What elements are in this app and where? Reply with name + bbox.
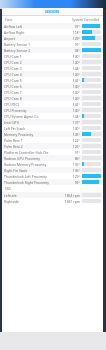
button[interactable]: CPU Core 5 xyxy=(2,77,103,83)
staticText: SENSORS xyxy=(45,10,60,14)
staticText: Fans xyxy=(5,18,12,22)
button[interactable]: Platform Controller Hub Die xyxy=(2,149,103,155)
staticText: 140° xyxy=(72,96,80,101)
button[interactable]: Thunderbolt Right Proximity xyxy=(2,179,103,185)
staticText: Airport xyxy=(4,36,72,41)
staticText: CPU Core 8 xyxy=(4,96,72,101)
staticText: 142° xyxy=(72,78,80,83)
staticText: CPU Core 7 xyxy=(4,90,72,95)
staticText: Intel GPU xyxy=(4,120,72,125)
button[interactable]: Right Fin Stack xyxy=(2,167,103,173)
button[interactable]: CPU System Agent Co xyxy=(2,113,103,119)
staticText: Airflow Left xyxy=(4,24,74,29)
staticText: 129° xyxy=(72,36,80,41)
staticText: Airflow Right xyxy=(4,30,72,35)
staticText: 145° xyxy=(72,132,80,137)
button[interactable]: CPU Core 2 xyxy=(2,59,103,65)
button[interactable]: Palm Rest 2 xyxy=(2,143,103,149)
button[interactable]: Battery Sensor 1 xyxy=(2,41,103,47)
button[interactable]: Memory Proximity xyxy=(2,131,103,137)
button[interactable]: CPU Proximity xyxy=(2,107,103,113)
button[interactable]: Radeon Memory Proximity xyxy=(2,161,103,167)
staticText: Platform Controller Hub Die xyxy=(4,150,74,155)
button[interactable]: Battery Sensor 2 xyxy=(2,47,103,53)
staticText: Radeon GPU Proximity xyxy=(4,156,74,161)
staticText: CPU Core 1 xyxy=(4,54,72,59)
staticText: 136° xyxy=(72,168,80,173)
staticText: 140° xyxy=(72,60,80,65)
button[interactable]: CPU Core 1 xyxy=(2,53,103,59)
staticText: 129° xyxy=(72,174,80,179)
button[interactable]: Intel GPU xyxy=(2,119,103,125)
staticText: CPU Core 3 xyxy=(4,66,72,71)
staticText: 94° xyxy=(74,48,80,53)
staticText: Palm Rest 2 xyxy=(4,144,72,149)
staticText: Radeon Memory Proximity xyxy=(4,162,72,167)
staticText: 118° xyxy=(72,30,80,35)
staticText: CPU Core 2 xyxy=(4,60,72,65)
staticText: CPU PECI xyxy=(4,102,72,107)
button[interactable]: Airport xyxy=(2,35,103,41)
staticText: Battery Sensor 2 xyxy=(4,48,74,53)
staticText: Memory Proximity xyxy=(4,132,72,137)
staticText: 1681 rpm xyxy=(64,199,80,204)
staticText: 140° xyxy=(72,54,80,59)
staticText: CPU Core 4 xyxy=(4,72,72,77)
staticText: SSD xyxy=(5,187,11,191)
button[interactable]: CPU Core 4 xyxy=(2,71,103,77)
button[interactable]: Thunderbolt Left Proximity xyxy=(2,173,103,179)
staticText: 122° xyxy=(72,138,80,143)
staticText: Palm Rest 1 xyxy=(4,138,72,143)
button[interactable]: Airflow Right xyxy=(2,29,103,35)
staticText: Thunderbolt Left Proximity xyxy=(4,174,72,179)
staticText: 140° xyxy=(72,108,80,113)
staticText: 135° xyxy=(72,162,80,167)
staticText: 140° xyxy=(72,126,80,131)
staticText: 140° xyxy=(72,72,80,77)
button[interactable]: Leftside xyxy=(2,192,103,198)
staticText: 86° xyxy=(74,156,80,161)
staticText: Right Fin Stack xyxy=(4,168,72,173)
staticText: Rightside xyxy=(4,199,64,204)
button[interactable]: CPU Core 7 xyxy=(2,89,103,95)
staticText: Thunderbolt Right Proximity xyxy=(4,180,74,185)
staticText: CPU Core 6 xyxy=(4,84,72,89)
staticText: 91° xyxy=(74,42,80,47)
staticText: 97° xyxy=(74,24,80,29)
button[interactable]: CPU Core 6 xyxy=(2,83,103,89)
button[interactable]: Palm Rest 1 xyxy=(2,137,103,143)
staticText: 144° xyxy=(72,114,80,119)
staticText: Left Fin Stack xyxy=(4,126,72,131)
button[interactable]: CPU Core 8 xyxy=(2,95,103,101)
staticText: 140° xyxy=(72,84,80,89)
button[interactable]: CPU PECI xyxy=(2,101,103,107)
staticText: 93° xyxy=(74,180,80,185)
staticText: CPU Proximity xyxy=(4,108,72,113)
staticText: 137° xyxy=(72,120,80,125)
staticText: CPU System Agent Co xyxy=(4,114,72,119)
staticText: CPU Core 5 xyxy=(4,78,72,83)
staticText: 140° xyxy=(72,90,80,95)
staticText: 144° xyxy=(72,66,80,71)
staticText: 1864 rpm xyxy=(64,193,80,198)
staticText: Leftside xyxy=(4,193,64,198)
button[interactable]: Left Fin Stack xyxy=(2,125,103,131)
staticText: 126° xyxy=(72,144,80,149)
staticText: System Controlled xyxy=(72,18,100,22)
staticText: Battery Sensor 1 xyxy=(4,42,74,47)
button[interactable]: CPU Core 3 xyxy=(2,65,103,71)
button[interactable]: Radeon GPU Proximity xyxy=(2,155,103,161)
button[interactable]: Airflow Left xyxy=(2,23,103,29)
staticText: 91° xyxy=(74,150,80,155)
staticText: 142° xyxy=(72,102,80,107)
button[interactable]: Rightside xyxy=(2,198,103,204)
